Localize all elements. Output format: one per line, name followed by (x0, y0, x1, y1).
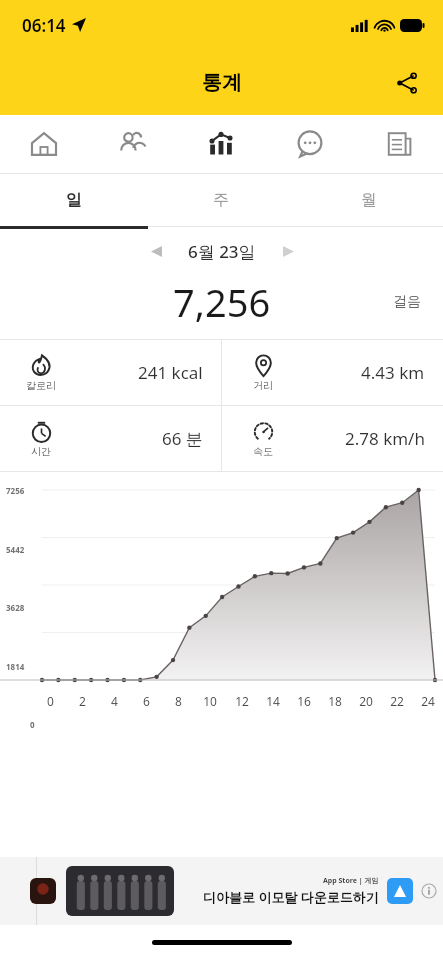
staticText: 10 (203, 693, 217, 709)
staticText: 14 (266, 693, 280, 709)
staticText: 4.43 km (361, 361, 425, 384)
staticText: 디아블로 이모탈 다운로드하기 (203, 888, 379, 906)
staticText: 18 (328, 693, 342, 709)
staticText: 0 (30, 719, 35, 730)
staticText: 24 (421, 693, 435, 709)
button[interactable]: 시간 (0, 406, 221, 471)
staticText: 0 (47, 693, 54, 709)
button[interactable]: Statistics (176, 115, 265, 173)
button[interactable]: 거리 (222, 340, 443, 405)
staticText: 8 (175, 693, 182, 709)
staticText: 7,256 (173, 276, 271, 328)
button[interactable]: App Store | 게임 (0, 857, 443, 925)
button[interactable]: Share (385, 61, 429, 105)
staticText: 통계 (202, 70, 242, 95)
staticText: 4 (111, 693, 118, 709)
staticText: App Store | 게임 (323, 876, 379, 886)
staticText: 7256 (6, 485, 25, 496)
staticText: 241 kcal (138, 361, 203, 384)
staticText: 3628 (6, 602, 25, 613)
button[interactable]: 일 (0, 174, 147, 226)
staticText: 주 (213, 190, 229, 210)
button[interactable]: Previous day (138, 233, 174, 269)
staticText: 월 (361, 190, 377, 210)
staticText: 1814 (6, 661, 25, 672)
staticText: 66 분 (162, 427, 203, 450)
staticText: 2 (79, 693, 86, 709)
button[interactable]: Ad info (421, 883, 437, 899)
staticText: 16 (297, 693, 311, 709)
button[interactable]: 주 (147, 174, 295, 226)
staticText: 시간 (31, 445, 51, 458)
staticText: 12 (235, 693, 249, 709)
staticText: 2.78 km/h (345, 427, 425, 450)
button[interactable]: 속도 (222, 406, 443, 471)
staticText: 6 (143, 693, 150, 709)
staticText: 일 (66, 190, 82, 210)
staticText: 거리 (253, 379, 273, 392)
staticText: 20 (359, 693, 373, 709)
button[interactable]: Chat (265, 115, 354, 173)
staticText: 6월 23일 (188, 240, 256, 263)
button[interactable]: Next day (270, 233, 306, 269)
staticText: 06:14 (22, 14, 66, 37)
button[interactable]: Friends (88, 115, 176, 173)
button[interactable]: 칼로리 (0, 340, 221, 405)
staticText: 칼로리 (26, 379, 56, 392)
staticText: 22 (390, 693, 404, 709)
staticText: 5442 (6, 544, 25, 555)
staticText: 속도 (253, 445, 273, 458)
staticText: 걸음 (393, 293, 421, 311)
button[interactable]: News (354, 115, 443, 173)
button[interactable]: Home (0, 115, 88, 173)
button[interactable]: 월 (295, 174, 443, 226)
